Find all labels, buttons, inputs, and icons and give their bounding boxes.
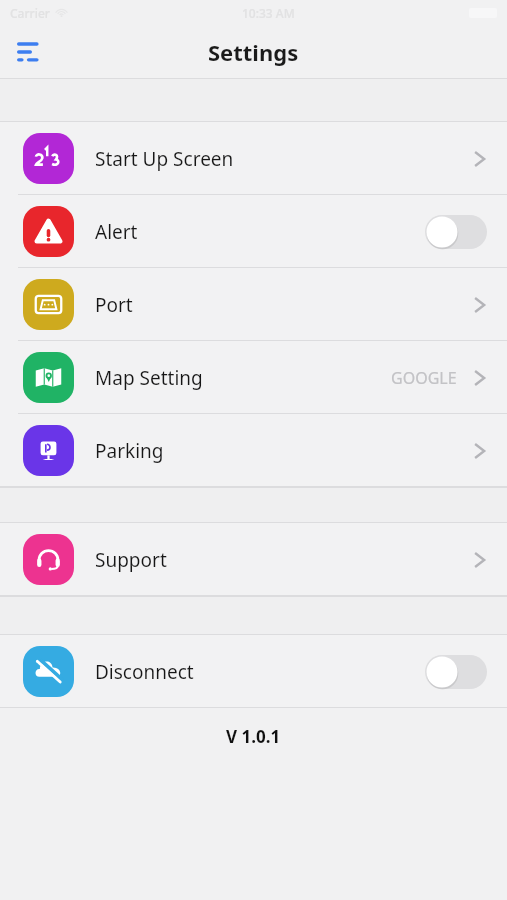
button[interactable]: Toggle [425, 655, 487, 689]
staticText: Start Up Screen [95, 146, 234, 172]
button[interactable]: Disconnect [0, 635, 507, 708]
button[interactable]: Parking [0, 414, 507, 487]
staticText: GOOGLE [391, 367, 457, 389]
staticText: V 1.0.1 [226, 725, 281, 748]
button[interactable]: Map Setting [0, 341, 507, 414]
staticText: Disconnect [95, 659, 194, 685]
staticText: Carrier [10, 5, 50, 21]
button[interactable]: Port [0, 268, 507, 341]
staticText: Parking [95, 438, 164, 464]
button[interactable]: Menu [8, 28, 56, 76]
staticText: Port [95, 292, 133, 318]
staticText: Map Setting [95, 365, 203, 391]
button[interactable]: Start Up Screen [0, 122, 507, 195]
staticText: 10:33 AM [242, 5, 295, 21]
button[interactable]: Toggle [425, 215, 487, 249]
staticText: Settings [208, 37, 299, 67]
button[interactable]: Support [0, 523, 507, 596]
staticText: Support [95, 547, 167, 573]
staticText: Alert [95, 219, 138, 245]
button[interactable]: Alert [0, 195, 507, 268]
